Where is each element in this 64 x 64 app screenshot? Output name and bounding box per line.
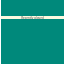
staticText: Recently played bbox=[21, 16, 44, 19]
button[interactable]: Recently played bbox=[1, 16, 64, 19]
